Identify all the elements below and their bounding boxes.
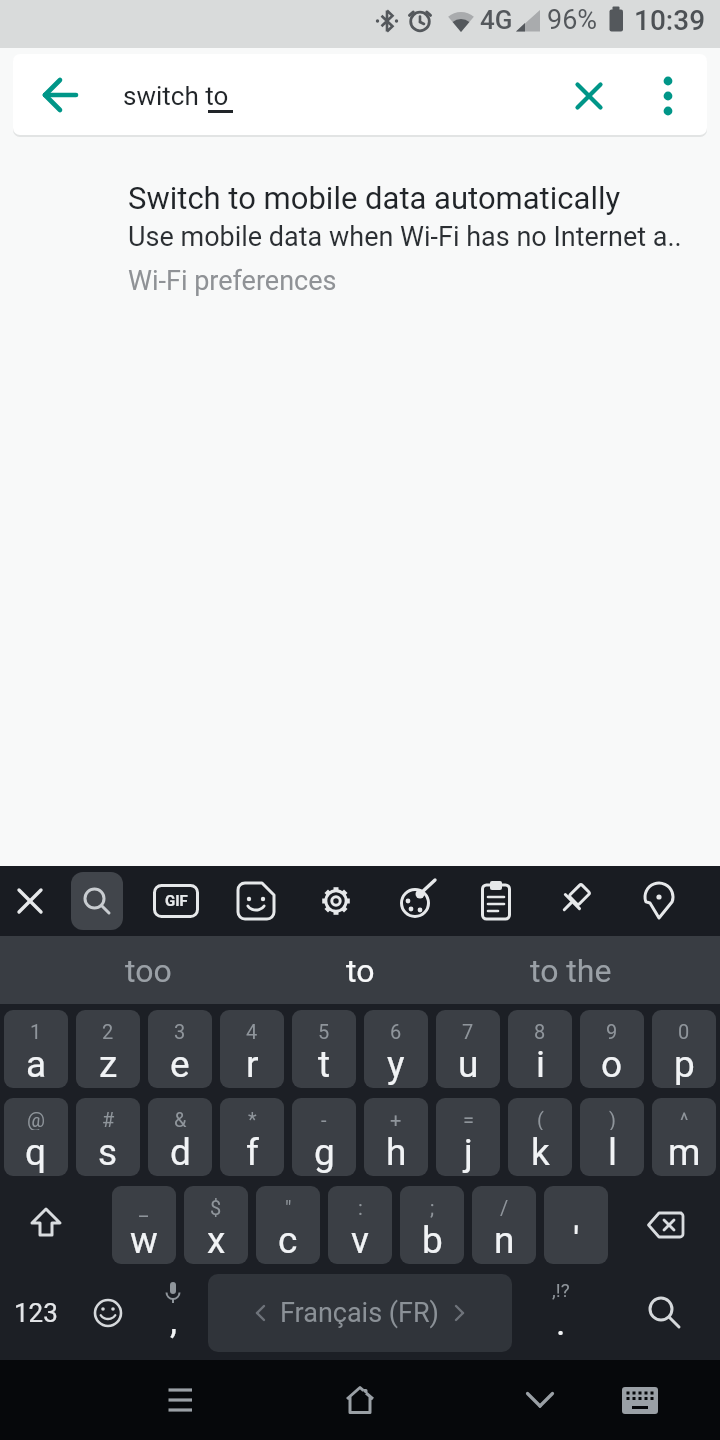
staticText: ( (537, 1108, 544, 1130)
button[interactable] (553, 877, 601, 925)
button[interactable]: ( (508, 1098, 572, 1176)
staticText: too (125, 952, 172, 990)
staticText: & (174, 1108, 187, 1130)
button[interactable]: ,!? (512, 1274, 610, 1352)
staticText: g (314, 1131, 335, 1174)
button[interactable]: 2 (76, 1010, 140, 1088)
button[interactable]: / (472, 1186, 536, 1264)
staticText: ) (609, 1108, 616, 1130)
button[interactable]: 9 (580, 1010, 644, 1088)
staticText: m (668, 1131, 701, 1174)
button[interactable] (504, 1364, 576, 1436)
staticText: - (321, 1108, 327, 1130)
button[interactable] (72, 1274, 144, 1352)
staticText: _ (139, 1196, 149, 1218)
staticText: x (207, 1219, 226, 1262)
button[interactable] (6, 877, 54, 925)
button[interactable] (612, 1186, 720, 1264)
staticText: , (170, 1300, 178, 1342)
staticText: v (351, 1219, 369, 1262)
button[interactable] (30, 936, 266, 1004)
staticText: switch to (123, 81, 229, 111)
button[interactable]: + (364, 1098, 428, 1176)
button[interactable] (610, 1274, 720, 1352)
staticText: f (246, 1131, 259, 1174)
staticText: w (130, 1219, 158, 1262)
button[interactable] (71, 872, 123, 930)
button[interactable] (0, 160, 720, 320)
button[interactable] (472, 877, 520, 925)
staticText: 0 (678, 1020, 690, 1042)
button[interactable]: ^ (652, 1098, 716, 1176)
staticText: b (422, 1219, 443, 1262)
button[interactable]: 3 (148, 1010, 212, 1088)
button[interactable] (604, 1364, 676, 1436)
staticText: i (536, 1043, 545, 1086)
button[interactable]: @ (4, 1098, 68, 1176)
staticText: Use mobile data when Wi-Fi has no Intern… (128, 221, 682, 253)
staticText: r (246, 1043, 259, 1086)
button[interactable]: " (256, 1186, 320, 1264)
staticText: p (674, 1043, 695, 1086)
button[interactable] (0, 1186, 108, 1264)
button[interactable]: # (76, 1098, 140, 1176)
staticText: e (170, 1043, 190, 1086)
staticText: 123 (14, 1298, 58, 1328)
button[interactable]: * (220, 1098, 284, 1176)
staticText: o (601, 1043, 623, 1086)
button[interactable]: 123 (0, 1274, 72, 1352)
staticText: ; (430, 1196, 435, 1218)
button[interactable]: = (436, 1098, 500, 1176)
button[interactable] (640, 68, 696, 124)
button[interactable] (454, 936, 690, 1004)
button[interactable]: 1 (4, 1010, 68, 1088)
staticText: : (358, 1196, 363, 1218)
staticText: d (170, 1131, 191, 1174)
staticText: 8 (534, 1020, 546, 1042)
staticText: to the (530, 952, 612, 990)
button[interactable]: 6 (364, 1010, 428, 1088)
staticText: 6 (390, 1020, 402, 1042)
staticText: Switch to mobile data automatically (128, 180, 621, 216)
button[interactable]: 7 (436, 1010, 500, 1088)
staticText: n (494, 1219, 515, 1262)
button[interactable]: ; (400, 1186, 464, 1264)
button[interactable]: - (292, 1098, 356, 1176)
button[interactable]: Français (FR) (208, 1274, 512, 1352)
button[interactable]: GIF (152, 877, 200, 925)
button[interactable]: 0 (652, 1010, 716, 1088)
button[interactable]: _ (112, 1186, 176, 1264)
staticText: 2 (102, 1020, 114, 1042)
button[interactable]: 5 (292, 1010, 356, 1088)
button[interactable] (324, 1364, 396, 1436)
button[interactable] (232, 877, 280, 925)
button[interactable] (312, 877, 360, 925)
button[interactable] (144, 1364, 216, 1436)
staticText: GIF (165, 892, 188, 910)
button[interactable]: 4 (220, 1010, 284, 1088)
staticText: ^ (680, 1108, 689, 1130)
button[interactable]: ' (544, 1186, 608, 1264)
button[interactable] (27, 62, 95, 128)
button[interactable]: $ (184, 1186, 248, 1264)
staticText: k (531, 1131, 550, 1174)
staticText: " (285, 1196, 292, 1218)
staticText: + (390, 1108, 402, 1130)
button[interactable] (635, 877, 683, 925)
staticText: ,!? (552, 1279, 570, 1301)
staticText: l (608, 1131, 617, 1174)
button[interactable]: & (148, 1098, 212, 1176)
staticText: y (387, 1043, 405, 1086)
staticText: # (102, 1108, 115, 1130)
staticText: 9 (606, 1020, 618, 1042)
button[interactable]: , (144, 1274, 204, 1352)
button[interactable] (392, 877, 440, 925)
staticText: / (500, 1196, 509, 1218)
button[interactable]: ) (580, 1098, 644, 1176)
button[interactable]: 8 (508, 1010, 572, 1088)
button[interactable] (561, 68, 617, 124)
button[interactable]: : (328, 1186, 392, 1264)
staticText: q (25, 1131, 47, 1174)
button[interactable] (272, 936, 448, 1004)
staticText: 10:39 (634, 4, 706, 37)
